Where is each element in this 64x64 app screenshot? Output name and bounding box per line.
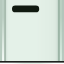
button[interactable]: Phone product photo xyxy=(0,0,64,64)
